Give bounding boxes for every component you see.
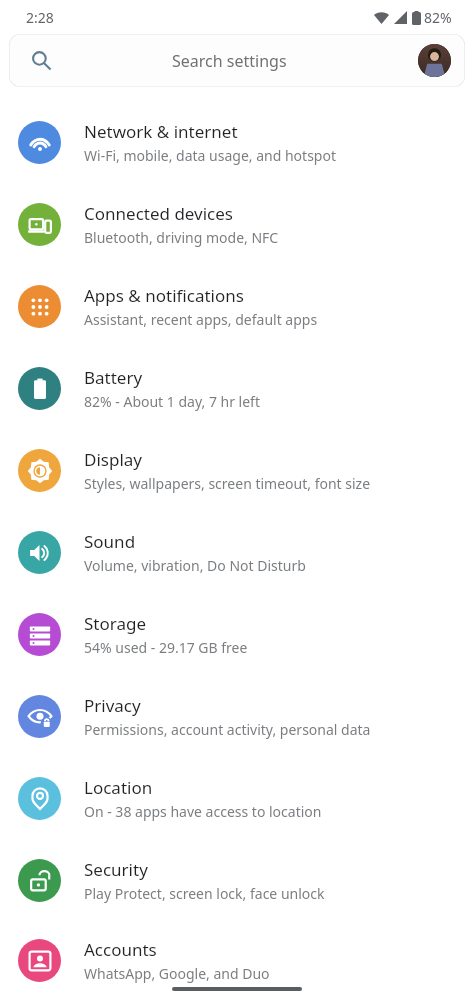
button[interactable]: Search settings	[9, 34, 465, 87]
staticText: 82% - About 1 day, 7 hr left	[84, 392, 260, 411]
button[interactable]: Accounts	[0, 921, 474, 1000]
staticText: 2:28	[26, 8, 54, 27]
button[interactable]: Security	[0, 839, 474, 921]
button[interactable]: Storage	[0, 593, 474, 675]
staticText: Location	[84, 776, 153, 799]
button[interactable]: Sound	[0, 511, 474, 593]
staticText: Assistant, recent apps, default apps	[84, 310, 318, 329]
staticText: On - 38 apps have access to location	[84, 802, 322, 821]
staticText: Battery	[84, 366, 143, 389]
staticText: Security	[84, 858, 148, 881]
button[interactable]: Display	[0, 429, 474, 511]
staticText: Bluetooth, driving mode, NFC	[84, 228, 279, 247]
staticText: Connected devices	[84, 202, 234, 225]
staticText: Sound	[84, 530, 136, 553]
staticText: Styles, wallpapers, screen timeout, font…	[84, 474, 371, 493]
staticText: Volume, vibration, Do Not Disturb	[84, 556, 306, 575]
staticText: Storage	[84, 612, 147, 635]
button[interactable]: Privacy	[0, 675, 474, 757]
button[interactable]: Apps & notifications	[0, 265, 474, 347]
staticText: Apps & notifications	[84, 284, 244, 307]
button[interactable]: Network & internet	[0, 101, 474, 183]
staticText: Wi-Fi, mobile, data usage, and hotspot	[84, 146, 336, 165]
button[interactable]: Account	[418, 44, 451, 77]
staticText: Network & internet	[84, 120, 238, 143]
button[interactable]: Connected devices	[0, 183, 474, 265]
button[interactable]: Location	[0, 757, 474, 839]
staticText: WhatsApp, Google, and Duo	[84, 964, 270, 983]
staticText: 82%	[424, 8, 452, 27]
staticText: Permissions, account activity, personal …	[84, 720, 371, 739]
button[interactable]: Battery	[0, 347, 474, 429]
staticText: 54% used - 29.17 GB free	[84, 638, 248, 657]
staticText: Play Protect, screen lock, face unlock	[84, 884, 325, 903]
staticText: Privacy	[84, 694, 141, 717]
staticText: Search settings	[172, 50, 287, 72]
staticText: Accounts	[84, 938, 157, 961]
staticText: Display	[84, 448, 142, 471]
